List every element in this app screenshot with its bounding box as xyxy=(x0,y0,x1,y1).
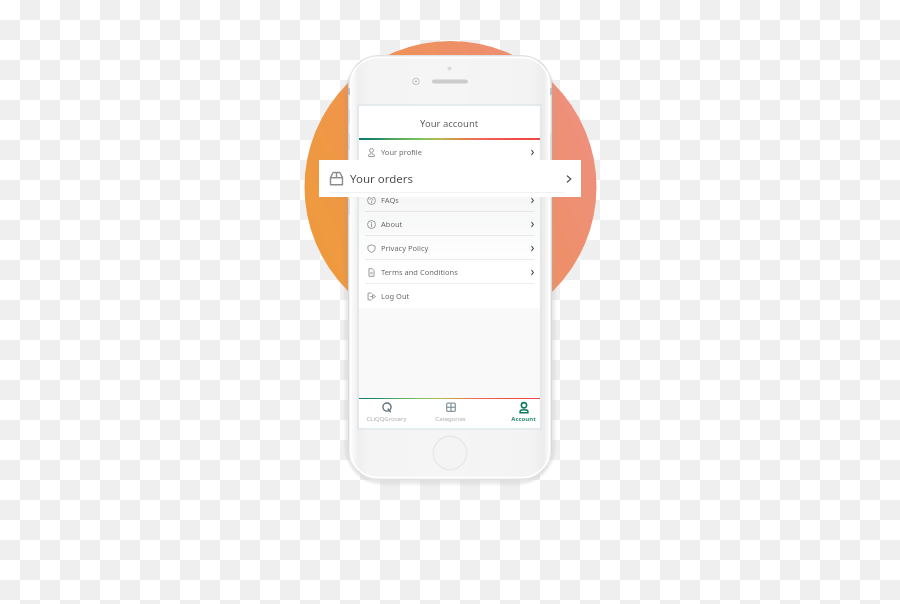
button[interactable]: Account xyxy=(495,399,551,428)
staticText: About xyxy=(381,219,403,229)
staticText: Your profile xyxy=(381,147,422,157)
staticText: Log Out xyxy=(381,291,410,301)
staticText: Privacy Policy xyxy=(381,243,429,253)
button[interactable]: About xyxy=(359,212,540,236)
button[interactable]: Log Out xyxy=(359,284,540,308)
staticText: Your orders xyxy=(350,171,414,187)
staticText: Your orders xyxy=(381,171,423,181)
button[interactable]: Your orders xyxy=(359,164,540,188)
staticText: Account xyxy=(511,415,536,423)
staticText: CLiQQGrocery xyxy=(366,415,407,423)
button[interactable]: CLiQQGrocery xyxy=(358,399,414,428)
staticText: FAQs xyxy=(381,195,399,205)
button[interactable]: Your orders xyxy=(319,160,581,197)
button[interactable]: Categories xyxy=(422,399,478,428)
button[interactable]: FAQs xyxy=(359,188,540,212)
button[interactable]: Your profile xyxy=(359,140,540,164)
button[interactable]: Terms and Conditions xyxy=(359,260,540,284)
staticText: Categories xyxy=(435,415,466,423)
staticText: Terms and Conditions xyxy=(381,267,458,277)
staticText: Your account xyxy=(420,117,479,130)
button[interactable]: Privacy Policy xyxy=(359,236,540,260)
